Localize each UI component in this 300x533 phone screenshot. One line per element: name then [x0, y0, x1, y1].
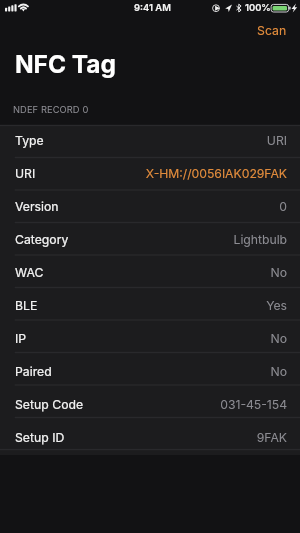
- staticText: BLE: [15, 298, 38, 313]
- staticText: IP: [15, 331, 27, 346]
- button[interactable]: Paired: [0, 356, 300, 389]
- staticText: 031-45-154: [220, 397, 287, 412]
- staticText: 9FAK: [256, 430, 287, 445]
- staticText: No: [270, 265, 287, 280]
- staticText: Category: [15, 232, 69, 247]
- staticText: No: [270, 331, 287, 346]
- staticText: Lightbulb: [233, 232, 287, 247]
- button[interactable]: Setup ID: [0, 422, 300, 455]
- button[interactable]: Scan NFC tag: [247, 22, 300, 40]
- staticText: URI: [15, 166, 36, 181]
- staticText: 100%: [245, 2, 271, 13]
- staticText: NDEF RECORD 0: [13, 104, 89, 115]
- button[interactable]: Setup Code: [0, 389, 300, 422]
- staticText: Type: [15, 133, 44, 148]
- staticText: Setup ID: [15, 430, 65, 445]
- button[interactable]: IP: [0, 323, 300, 356]
- staticText: NFC Tag: [15, 49, 116, 79]
- button[interactable]: WAC: [0, 257, 300, 290]
- button[interactable]: BLE: [0, 290, 300, 323]
- staticText: Version: [15, 199, 59, 214]
- staticText: 9:41 AM: [134, 2, 171, 13]
- button[interactable]: Category: [0, 224, 300, 257]
- staticText: X-HM://0056IAK029FAK: [145, 166, 287, 181]
- button[interactable]: URI: [0, 158, 300, 191]
- staticText: Scan: [257, 23, 287, 38]
- staticText: Setup Code: [15, 397, 84, 412]
- staticText: Yes: [266, 298, 287, 313]
- button[interactable]: Version: [0, 191, 300, 224]
- button[interactable]: Type: [0, 125, 300, 158]
- staticText: Paired: [15, 364, 52, 379]
- staticText: WAC: [15, 265, 44, 280]
- staticText: 0: [279, 199, 287, 214]
- staticText: URI: [266, 133, 287, 148]
- staticText: No: [270, 364, 287, 379]
